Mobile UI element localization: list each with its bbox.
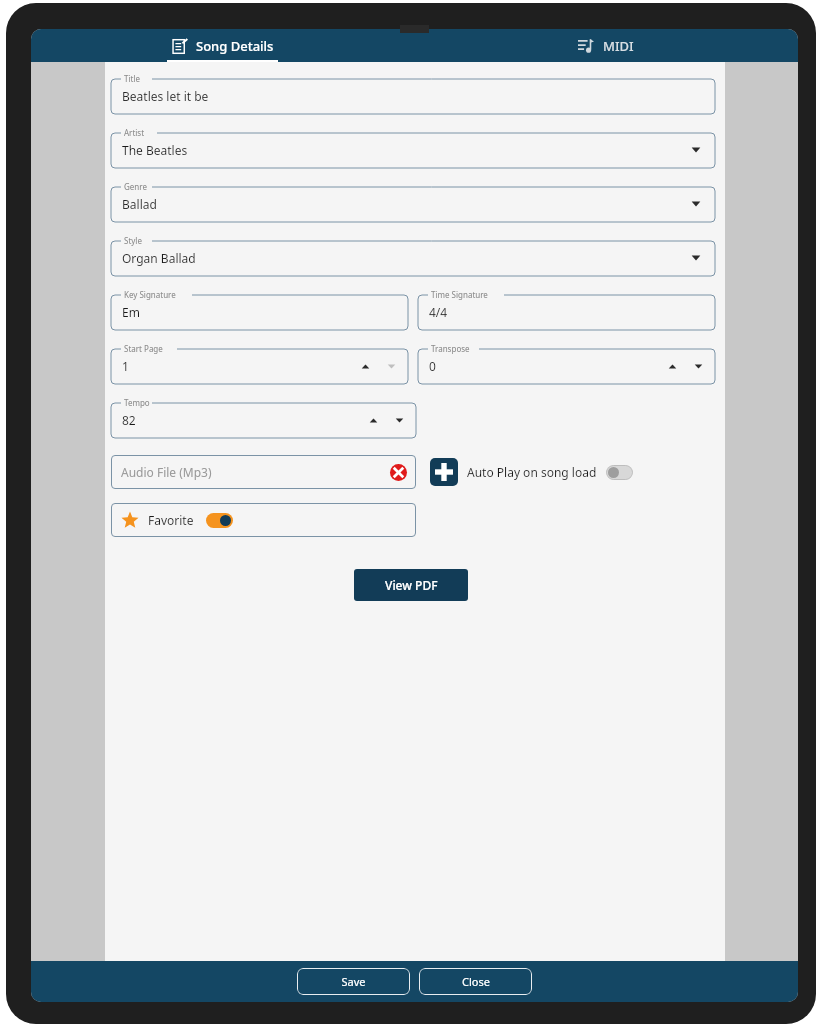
button[interactable]: Clear audio file: [390, 464, 407, 481]
staticText: 1: [122, 358, 129, 374]
staticText: Organ Ballad: [122, 250, 196, 266]
button[interactable]: Genre dropdown: [689, 197, 703, 211]
staticText: Style: [124, 235, 142, 246]
button[interactable]: Save: [297, 968, 410, 995]
staticText: 0: [429, 358, 436, 374]
staticText: Title: [124, 73, 140, 84]
staticText: Song Details: [196, 37, 274, 55]
staticText: Beatles let it be: [122, 88, 209, 104]
staticText: MIDI: [603, 37, 634, 55]
staticText: Favorite: [148, 512, 194, 528]
staticText: Time Signature: [431, 289, 488, 300]
button[interactable]: Audio File (Mp3): [111, 455, 416, 489]
staticText: Artist: [124, 127, 145, 138]
staticText: Save: [341, 974, 366, 989]
button[interactable]: Transpose increase: [666, 360, 679, 373]
button[interactable]: MIDI: [414, 29, 798, 62]
button[interactable]: Style dropdown: [689, 251, 703, 265]
staticText: View PDF: [385, 577, 438, 593]
staticText: Ballad: [122, 196, 157, 212]
staticText: Genre: [124, 181, 147, 192]
button[interactable]: Song Details: [31, 29, 414, 62]
button[interactable]: Artist dropdown: [689, 143, 703, 157]
button[interactable]: Close: [419, 968, 532, 995]
staticText: Start Page: [124, 343, 163, 354]
staticText: 4/4: [429, 304, 448, 320]
staticText: Tempo: [124, 397, 150, 408]
staticText: The Beatles: [122, 142, 188, 158]
button[interactable]: Start Page increase: [359, 360, 372, 373]
button[interactable]: Tempo increase: [367, 414, 380, 427]
button[interactable]: Transpose decrease: [692, 360, 705, 373]
button[interactable]: Favorite: [111, 503, 416, 537]
staticText: Key Signature: [124, 289, 176, 300]
staticText: Audio File (Mp3): [121, 464, 212, 480]
button[interactable]: View PDF: [354, 569, 468, 601]
button[interactable]: Toggle on: [206, 513, 233, 528]
button[interactable]: Toggle off: [606, 465, 633, 480]
button[interactable]: Start Page decrease: [385, 360, 398, 373]
staticText: Em: [122, 304, 140, 320]
staticText: Auto Play on song load: [467, 464, 597, 480]
staticText: 82: [122, 412, 136, 428]
button[interactable]: Tempo decrease: [393, 414, 406, 427]
button[interactable]: Add audio file: [430, 458, 458, 486]
staticText: Close: [462, 974, 490, 989]
staticText: Transpose: [431, 343, 470, 354]
